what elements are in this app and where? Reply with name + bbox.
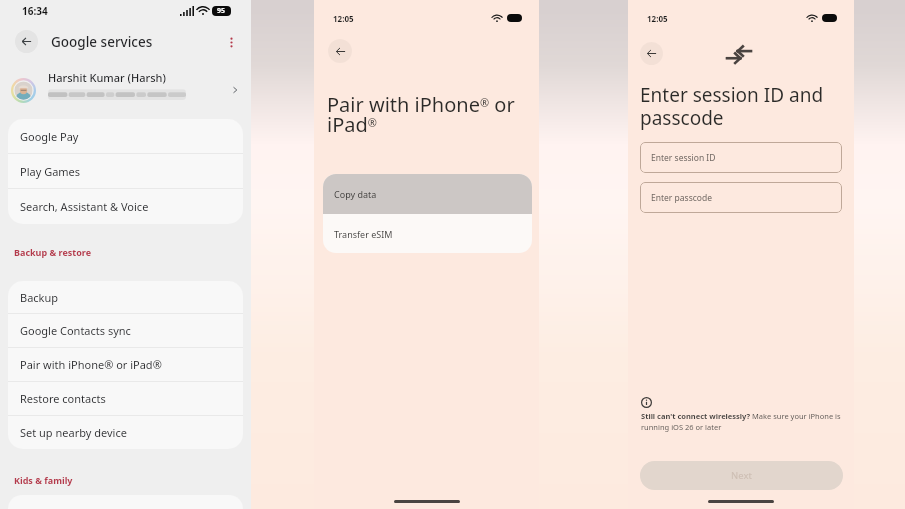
staticText: Transfer eSIM (334, 228, 393, 240)
button[interactable]: Enter session ID (640, 142, 842, 173)
staticText: Enter session ID (651, 152, 716, 164)
button[interactable]: Copy data (323, 174, 532, 214)
button[interactable]: Google Contacts sync (8, 314, 243, 347)
button[interactable]: Google Pay (8, 119, 243, 153)
staticText: Google services (51, 33, 153, 51)
staticText: Play Games (20, 164, 81, 179)
staticText: iPad® (327, 111, 377, 138)
staticText: Set up nearby device (20, 425, 127, 440)
staticText: Backup (20, 290, 59, 305)
staticText: passcode (640, 105, 724, 131)
button[interactable]: Set up nearby device (8, 416, 243, 449)
staticText: Pair with iPhone® or (327, 91, 515, 118)
staticText: 95 (217, 6, 226, 16)
button[interactable]: Back (15, 30, 38, 53)
staticText: Restore contacts (20, 391, 106, 406)
button[interactable]: Enter passcode (640, 182, 842, 213)
staticText: Google Contacts sync (20, 323, 131, 338)
button[interactable]: Transfer (727, 46, 751, 63)
button[interactable]: Back (640, 42, 663, 65)
staticText: Enter session ID and (640, 82, 824, 108)
staticText: Still can't connect wirelessly? Make sur… (641, 411, 843, 432)
staticText: 12:05 (647, 13, 668, 24)
button[interactable]: Search, Assistant & Voice (8, 189, 243, 224)
button[interactable]: Harshit Kumar (Harsh) (0, 62, 251, 118)
button[interactable]: More options (222, 33, 240, 51)
staticText: Next (731, 469, 752, 482)
button[interactable]: Pair with iPhone® or iPad® (8, 348, 243, 381)
button[interactable]: Restore contacts (8, 382, 243, 415)
button[interactable]: Back (328, 39, 352, 63)
staticText: Backup & restore (14, 246, 92, 258)
staticText: 16:34 (22, 4, 48, 18)
staticText: Pair with iPhone® or iPad® (20, 357, 162, 372)
button[interactable]: Next (640, 461, 843, 490)
staticText: Copy data (334, 188, 377, 200)
staticText: 12:05 (333, 13, 354, 24)
staticText: Enter passcode (651, 192, 712, 204)
staticText: Harshit Kumar (Harsh) (48, 70, 166, 85)
button[interactable]: Backup (8, 281, 243, 313)
staticText: Kids & family (14, 474, 73, 486)
button[interactable]: Play Games (8, 154, 243, 188)
button[interactable]: Transfer eSIM (323, 214, 532, 253)
other: Information (641, 397, 652, 408)
staticText: Google Pay (20, 129, 79, 144)
staticText: Search, Assistant & Voice (20, 199, 149, 214)
